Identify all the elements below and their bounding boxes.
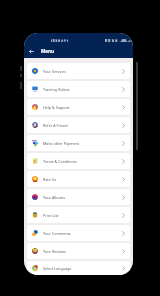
staticText: Select Language: [43, 266, 72, 271]
staticText: Rate Us: [43, 177, 57, 182]
staticText: Training Videos: [43, 87, 70, 92]
button[interactable]: Your Comments: [27, 225, 130, 241]
button[interactable]: Your Services: [27, 63, 130, 79]
button[interactable]: Your Albums: [27, 189, 130, 205]
button[interactable]: Your Reviews: [27, 243, 130, 259]
button[interactable]: Training Videos: [27, 81, 130, 97]
button[interactable]: Select Language: [27, 261, 130, 275]
staticText: Menu: [41, 48, 55, 54]
button[interactable]: Back: [24, 42, 38, 58]
staticText: Your Albums: [43, 195, 65, 200]
button[interactable]: Help & Support: [27, 99, 130, 115]
staticText: Your Reviews: [43, 249, 66, 254]
staticText: Help & Support: [43, 105, 70, 110]
button[interactable]: Refer A Friend: [27, 117, 130, 133]
button[interactable]: Terms & Conditions: [27, 153, 130, 169]
button[interactable]: Make other Payment: [27, 135, 130, 151]
staticText: Price List: [43, 213, 59, 218]
staticText: Make other Payment: [43, 141, 80, 146]
staticText: Your Comments: [43, 231, 71, 236]
button[interactable]: Rate Us: [27, 171, 130, 187]
staticText: Refer A Friend: [43, 123, 68, 128]
button[interactable]: Price List: [27, 207, 130, 223]
staticText: Your Services: [43, 69, 66, 74]
staticText: Terms & Conditions: [43, 159, 77, 164]
